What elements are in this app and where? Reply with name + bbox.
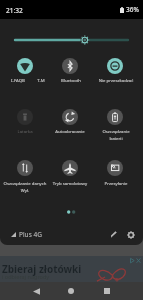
button[interactable]: Plus 4G (11, 230, 42, 239)
button[interactable]: Do not disturb (107, 58, 123, 74)
button[interactable]: Edit tiles (106, 227, 121, 242)
staticText: Oszczędzanie (87, 128, 143, 134)
staticText: Zbieraj złotówki (2, 262, 82, 276)
staticText: Nie przeszkadzać (87, 77, 143, 83)
staticText: Wył. (0, 187, 54, 193)
button[interactable]: Flashlight (17, 109, 33, 125)
button[interactable]: Home (62, 282, 80, 300)
button[interactable]: Battery saver (107, 109, 123, 125)
staticText: Tryb samolotowy (41, 180, 99, 186)
button[interactable]: Back (27, 282, 45, 300)
staticText: I-FAQB (0, 77, 47, 83)
staticText: Oszczędzanie danych (0, 180, 57, 186)
staticText: Plus 4G (19, 230, 42, 239)
staticText: Autoobracanie (41, 128, 99, 134)
staticText: baterii (87, 135, 143, 141)
staticText: i odbieraj nagrody (2, 273, 50, 280)
button[interactable]: Recents (98, 282, 116, 300)
button[interactable]: Cast (107, 160, 123, 176)
button[interactable]: Data saver (17, 160, 33, 176)
staticText: Latarka (0, 128, 54, 134)
staticText: Bluetooth (42, 77, 100, 83)
button[interactable]: Settings (123, 227, 138, 242)
button[interactable]: Brightness (8, 30, 143, 50)
button[interactable]: Wi-Fi (17, 58, 33, 74)
staticText: 36% (126, 5, 139, 14)
button[interactable]: Airplane mode (62, 160, 78, 176)
button[interactable]: Bluetooth (62, 58, 78, 74)
button[interactable]: Auto-rotate (62, 109, 78, 125)
staticText: Przesyłanie (87, 180, 143, 186)
staticText: T-M (12, 77, 70, 83)
staticText: 21:32 (6, 6, 23, 15)
